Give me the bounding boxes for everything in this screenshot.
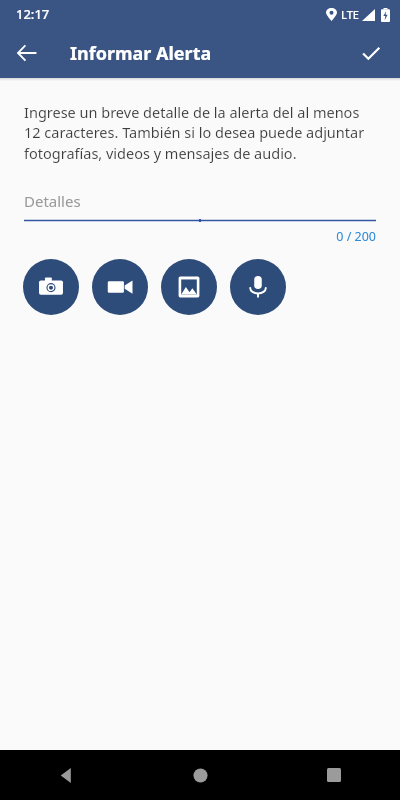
button[interactable]: Home [134,750,267,800]
staticText: Detalles [24,191,81,211]
staticText: 0 / 200 [0,228,376,245]
staticText: Informar Alerta [70,41,212,66]
button[interactable]: Record video [92,259,148,315]
staticText: 12:17 [16,5,50,23]
button[interactable]: Confirm [350,32,392,74]
button[interactable]: Attach image [161,259,217,315]
staticText: Ingrese un breve detalle de la alerta de… [24,102,370,164]
button[interactable]: Take photo [23,259,79,315]
staticText: LTE [341,7,359,22]
button[interactable]: Back [6,32,48,74]
button[interactable]: Detalles [24,191,376,222]
button[interactable]: Back [0,750,134,800]
button[interactable]: Recent apps [267,750,400,800]
button[interactable]: Record audio [230,259,286,315]
